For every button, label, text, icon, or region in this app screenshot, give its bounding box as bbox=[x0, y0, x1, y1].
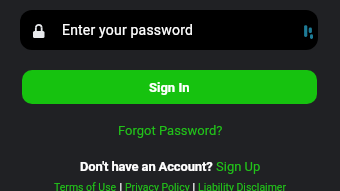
staticText: | bbox=[117, 181, 125, 191]
staticText: Enter your password bbox=[62, 22, 194, 38]
button[interactable]: Sign Up bbox=[216, 159, 261, 174]
button[interactable]: Enter your password bbox=[20, 10, 318, 50]
button[interactable]: Liability Disclaimer bbox=[198, 181, 286, 191]
staticText: Don't have an Account? bbox=[80, 159, 216, 174]
button[interactable]: Terms of Use bbox=[54, 181, 117, 191]
button[interactable]: Forgot Password? bbox=[118, 123, 223, 138]
button[interactable]: Privacy Policy bbox=[125, 181, 190, 191]
button[interactable]: Sign In bbox=[22, 70, 317, 104]
staticText: Sign In bbox=[149, 80, 190, 95]
staticText: | bbox=[190, 181, 198, 191]
